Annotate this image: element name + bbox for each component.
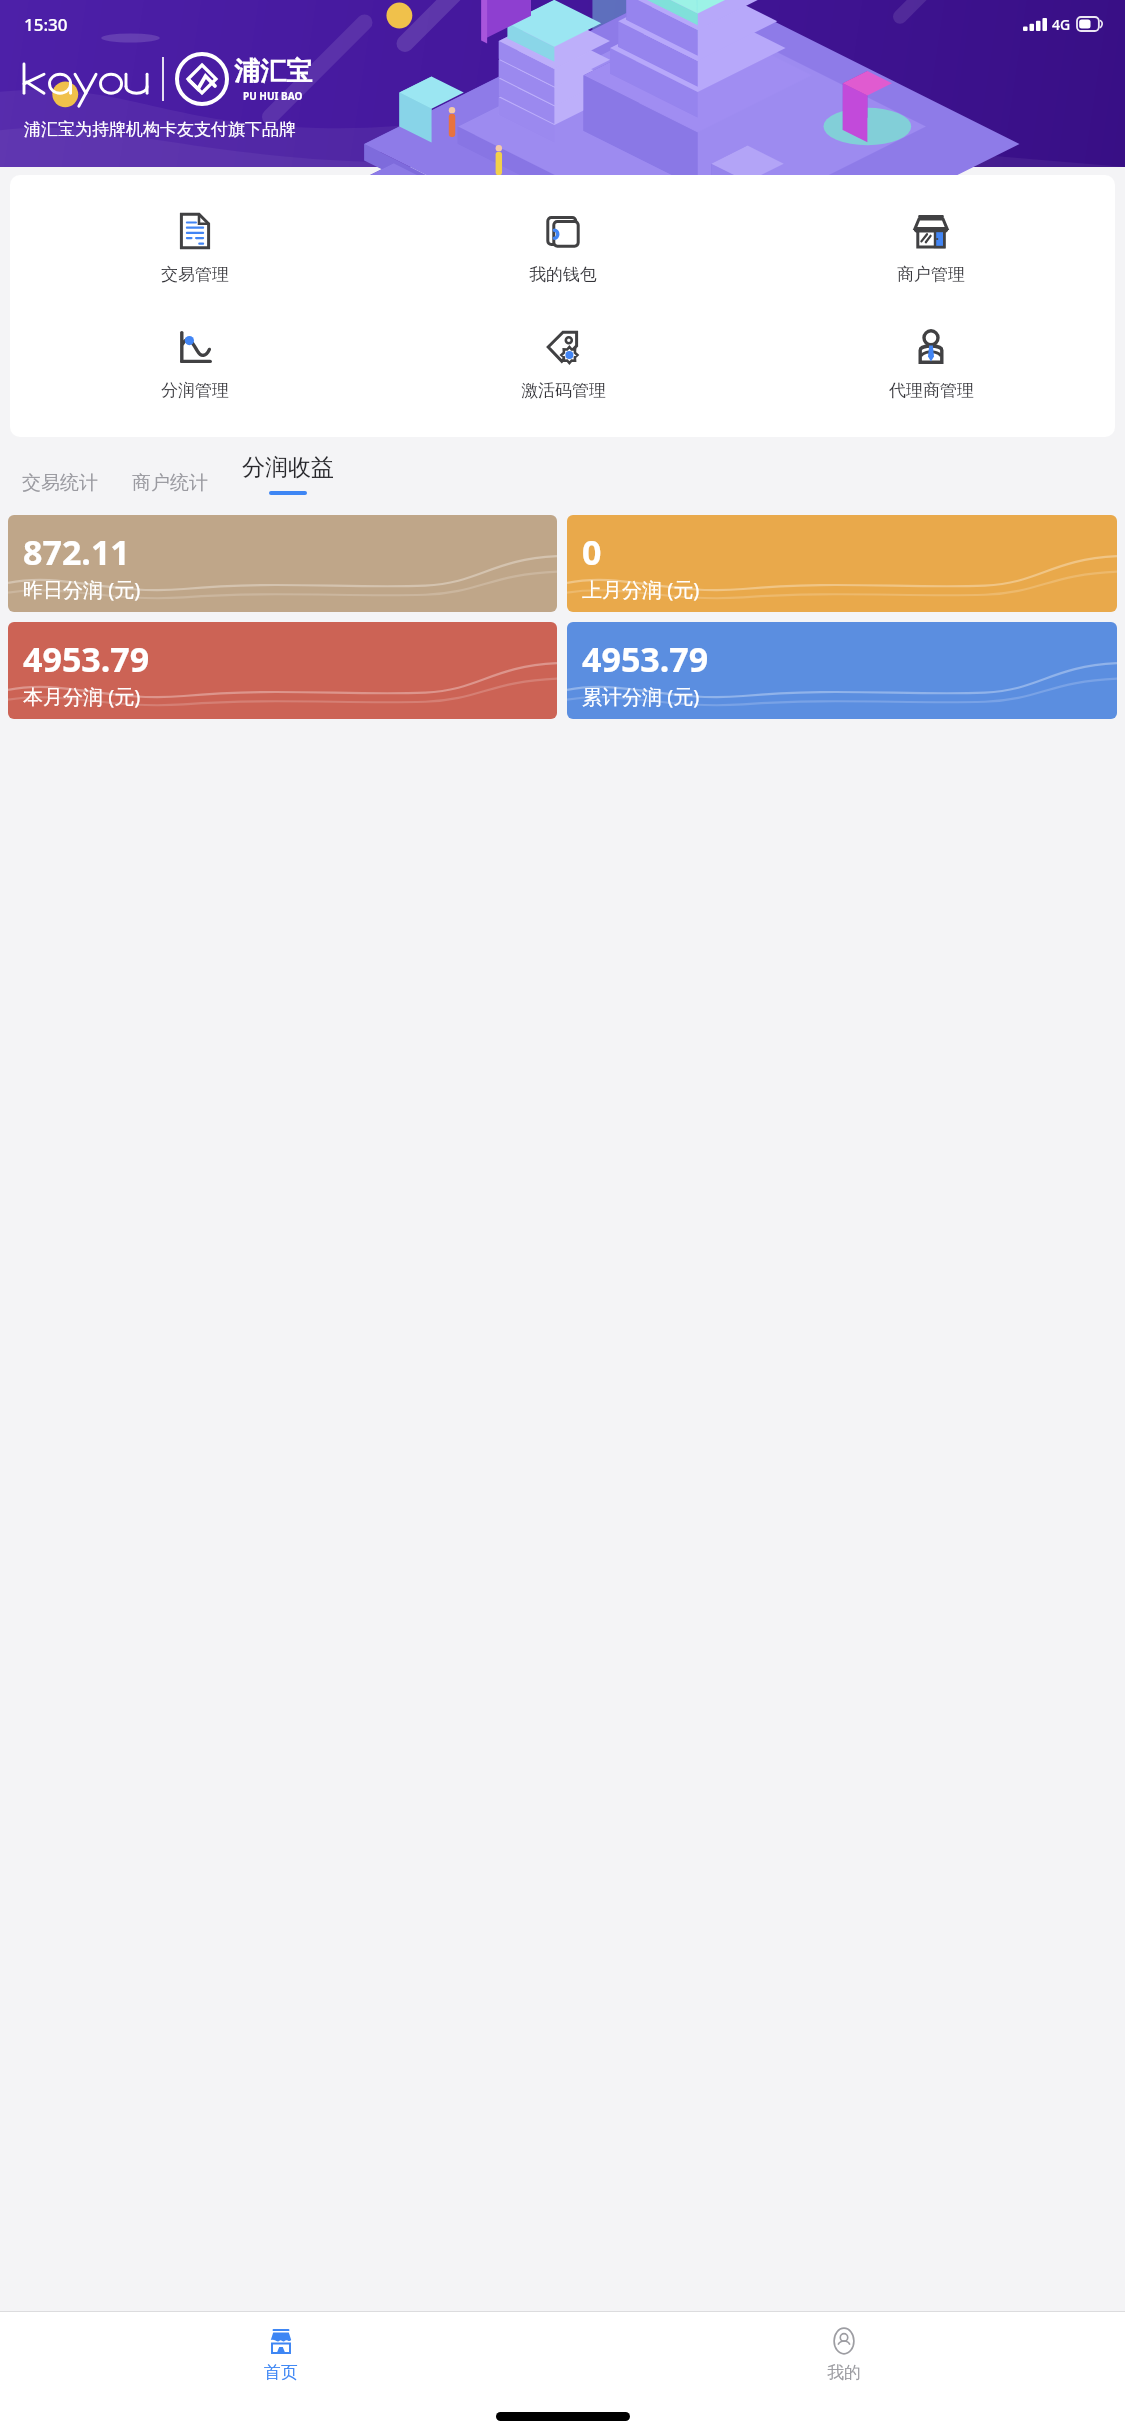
staticText: 4953.79: [582, 636, 709, 682]
button[interactable]: 我的: [562, 2320, 1125, 2389]
button[interactable]: 交易统计: [16, 467, 104, 499]
staticText: 我的钱包: [529, 264, 597, 285]
button[interactable]: 代理商管理: [747, 317, 1115, 411]
staticText: 分润收益: [242, 453, 334, 482]
staticText: 首页: [264, 2362, 298, 2383]
staticText: 商户管理: [897, 264, 965, 285]
button[interactable]: 4953.79: [8, 622, 557, 719]
button[interactable]: 激活码管理: [379, 317, 747, 411]
button[interactable]: 分润管理: [10, 317, 379, 411]
staticText: 0: [582, 529, 602, 575]
staticText: 交易管理: [161, 264, 229, 285]
staticText: 本月分润 (元): [23, 683, 141, 710]
staticText: 4953.79: [23, 636, 150, 682]
staticText: 累计分润 (元): [582, 683, 700, 710]
staticText: 激活码管理: [521, 380, 606, 401]
staticText: 15:30: [24, 13, 68, 36]
button[interactable]: 872.11: [8, 515, 557, 612]
button[interactable]: 4953.79: [567, 622, 1117, 719]
staticText: 浦汇宝为持牌机构卡友支付旗下品牌: [24, 119, 296, 140]
button[interactable]: 商户统计: [126, 467, 214, 499]
staticText: 代理商管理: [889, 380, 974, 401]
button[interactable]: 交易管理: [10, 201, 379, 295]
button[interactable]: 商户管理: [747, 201, 1115, 295]
staticText: 商户统计: [132, 471, 208, 495]
staticText: 交易统计: [22, 471, 98, 495]
staticText: 我的: [827, 2362, 861, 2383]
button[interactable]: 分润收益: [236, 449, 340, 499]
staticText: PU HUI BAO: [243, 89, 303, 103]
staticText: 浦汇宝: [234, 55, 312, 88]
staticText: 872.11: [23, 529, 130, 575]
button[interactable]: 0: [567, 515, 1117, 612]
button[interactable]: 首页: [0, 2320, 562, 2389]
staticText: 4G: [1052, 15, 1071, 34]
staticText: 上月分润 (元): [582, 576, 700, 603]
staticText: 昨日分润 (元): [23, 576, 141, 603]
staticText: 分润管理: [161, 380, 229, 401]
button[interactable]: 我的钱包: [379, 201, 747, 295]
